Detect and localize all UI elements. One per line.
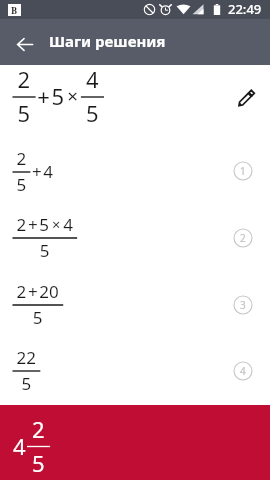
button[interactable]: Edit expression [228, 79, 266, 117]
button[interactable] [0, 204, 270, 270]
staticText: B [11, 4, 18, 16]
button[interactable] [0, 405, 270, 480]
button[interactable] [0, 138, 270, 204]
button[interactable] [0, 270, 270, 336]
staticText: Шаги решения [49, 31, 166, 51]
button[interactable]: Back [11, 31, 38, 58]
button[interactable] [0, 65, 270, 131]
button[interactable] [0, 336, 270, 402]
staticText: 22:49 [228, 0, 262, 18]
